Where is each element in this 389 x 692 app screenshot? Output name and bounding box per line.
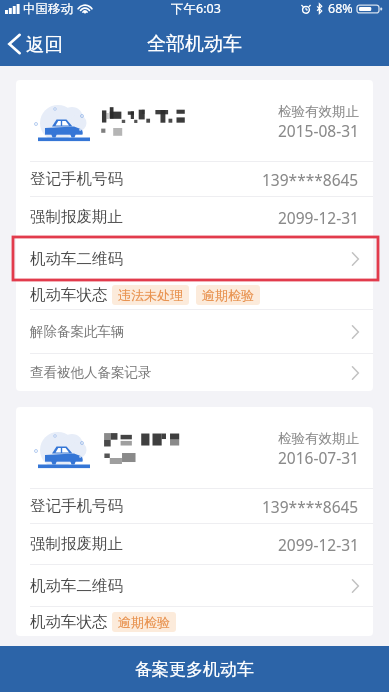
- button[interactable]: 查看被他人备案记录: [16, 354, 373, 391]
- staticText: 139****8645: [262, 496, 359, 517]
- staticText: 违法未处理: [118, 287, 183, 303]
- staticText: 下午6:03: [171, 0, 221, 17]
- staticText: 68%: [328, 0, 353, 17]
- staticText: 强制报废期止: [30, 534, 123, 554]
- staticText: 查看被他人备案记录: [30, 364, 152, 381]
- staticText: 检验有效期止: [278, 103, 359, 120]
- staticText: 全部机动车: [147, 32, 242, 56]
- staticText: 机动车二维码: [30, 576, 123, 596]
- button[interactable]: 备案更多机动车: [0, 646, 389, 692]
- staticText: 机动车状态: [30, 285, 108, 305]
- staticText: 2099-12-31: [278, 534, 359, 555]
- staticText: 备案更多机动车: [135, 659, 254, 680]
- staticText: 机动车状态: [30, 612, 108, 632]
- button[interactable]: 机动车二维码: [16, 238, 373, 279]
- staticText: 139****8645: [262, 169, 359, 190]
- staticText: 2015-08-31: [278, 120, 359, 141]
- staticText: 登记手机号码: [30, 496, 123, 516]
- button[interactable]: 机动车二维码: [16, 565, 373, 606]
- staticText: 逾期检验: [118, 614, 170, 630]
- staticText: 返回: [26, 33, 63, 56]
- staticText: 检验有效期止: [278, 430, 359, 447]
- staticText: 登记手机号码: [30, 169, 123, 189]
- staticText: 逾期检验: [202, 287, 254, 303]
- staticText: 强制报废期止: [30, 207, 123, 227]
- button[interactable]: 返回: [0, 22, 75, 66]
- staticText: 2099-12-31: [278, 207, 359, 228]
- staticText: 机动车二维码: [30, 249, 123, 269]
- staticText: 2016-07-31: [278, 447, 359, 468]
- button[interactable]: 解除备案此车辆: [16, 310, 373, 353]
- staticText: 中国移动: [23, 1, 73, 17]
- staticText: 解除备案此车辆: [30, 323, 125, 340]
